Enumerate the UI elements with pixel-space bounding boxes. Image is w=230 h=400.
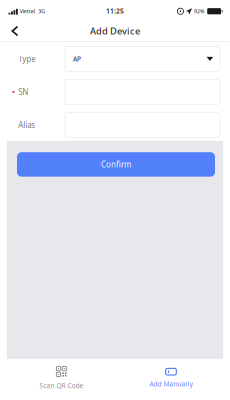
staticText: Viettel bbox=[20, 8, 35, 15]
staticText: AP bbox=[73, 54, 81, 63]
staticText: Type bbox=[18, 54, 36, 64]
staticText: 11:25 bbox=[106, 7, 124, 15]
staticText: 92% bbox=[194, 8, 204, 15]
button[interactable]: Scan QR Code bbox=[20, 366, 102, 396]
staticText: 3G bbox=[38, 8, 45, 15]
staticText: SN bbox=[18, 87, 28, 97]
staticText: Confirm bbox=[101, 159, 131, 170]
staticText: Add Manually bbox=[149, 379, 192, 388]
button[interactable]: Back bbox=[0, 22, 29, 40]
staticText: Alias bbox=[18, 120, 35, 130]
staticText: Add Device bbox=[90, 25, 140, 37]
button[interactable]: Confirm bbox=[17, 152, 215, 177]
staticText: Scan QR Code bbox=[39, 381, 83, 390]
button[interactable]: Add Manually bbox=[130, 366, 212, 396]
